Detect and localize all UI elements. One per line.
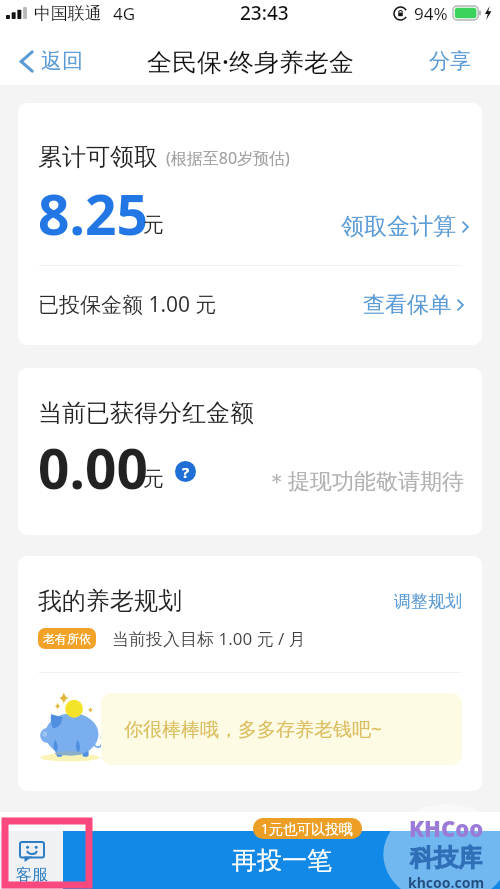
staticText: 已投保金额 1.00 元 [38, 290, 217, 319]
staticText: 调整规划 [394, 591, 462, 612]
staticText: 中国联通 [34, 3, 102, 24]
staticText: 分享 [429, 48, 471, 73]
staticText: 累计可领取 [38, 142, 158, 172]
staticText: 23:43 [240, 0, 289, 26]
staticText: 4G [113, 2, 136, 25]
staticText: 科技库 [410, 843, 482, 873]
button[interactable]: 领取金计算 [328, 214, 464, 251]
button[interactable]: 再投一笔 [63, 831, 500, 889]
staticText: ? [182, 462, 190, 482]
staticText: 当前投入目标 1.00 元 / 月 [112, 627, 306, 650]
staticText: 8.25 [38, 176, 148, 251]
staticText: 再投一笔 [232, 845, 332, 876]
staticText: 0.00 [38, 430, 148, 505]
staticText: 客服 [16, 865, 48, 885]
button[interactable]: 已投保金额 1.00 元 [18, 266, 482, 345]
staticText: ＊提现功能敬请期待 [266, 468, 464, 496]
staticText: 全民保·终身养老金 [147, 44, 354, 78]
staticText: 你很棒棒哦，多多存养老钱吧~ [124, 716, 382, 742]
button[interactable]: 返回 [0, 40, 93, 82]
button[interactable]: 调整规划 [392, 587, 464, 616]
staticText: 94% [414, 2, 448, 25]
button[interactable]: 说明 [175, 461, 196, 482]
staticText: 元 [143, 466, 164, 492]
staticText: 元 [143, 212, 164, 238]
button[interactable]: 分享 [413, 36, 500, 85]
staticText: 领取金计算 [341, 212, 456, 241]
staticText: 当前已获得分红金额 [38, 398, 254, 428]
staticText: 返回 [41, 48, 83, 74]
staticText: 老有所依 [43, 631, 91, 646]
staticText: KHCoo [409, 813, 484, 843]
staticText: khcoo.com [408, 873, 485, 889]
staticText: 查看保单 [363, 291, 451, 319]
staticText: (根据至80岁预估) [166, 147, 290, 169]
staticText: 1元也可以投哦 [261, 819, 354, 838]
staticText: 我的养老规划 [38, 586, 182, 616]
button[interactable]: 客服 [0, 831, 63, 889]
